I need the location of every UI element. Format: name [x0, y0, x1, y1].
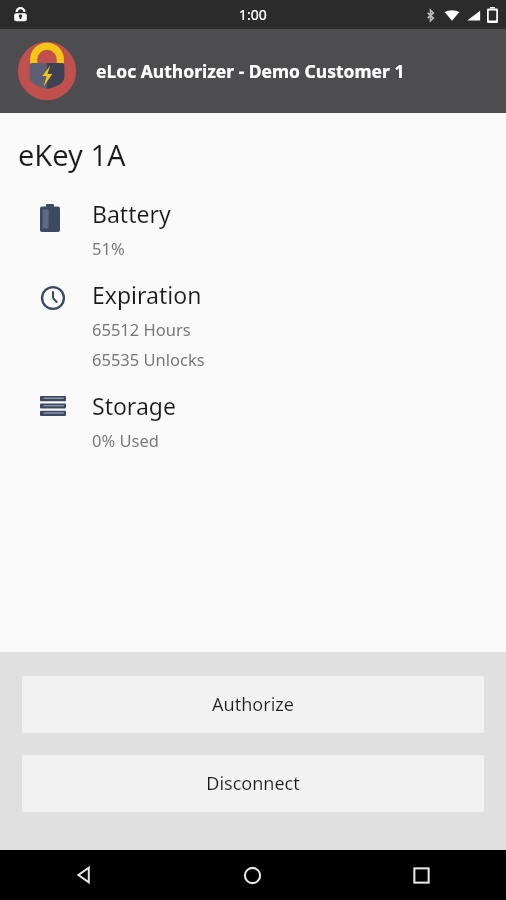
staticText: 51%: [92, 237, 125, 259]
staticText: eLoc Authorizer - Demo Customer 1: [96, 59, 405, 83]
staticText: 65535 Unlocks: [92, 348, 205, 370]
staticText: eKey 1A: [18, 135, 126, 174]
staticText: Storage: [92, 390, 176, 421]
staticText: Battery: [92, 198, 171, 229]
button[interactable]: Storage: [0, 390, 506, 451]
button[interactable]: Authorize: [22, 676, 484, 733]
button[interactable]: Expiration: [0, 279, 506, 370]
button[interactable]: Disconnect: [22, 755, 484, 812]
staticText: Authorize: [212, 692, 294, 717]
button[interactable]: Battery: [0, 198, 506, 259]
staticText: 1:00: [239, 5, 267, 24]
staticText: 0% Used: [92, 429, 159, 451]
staticText: 65512 Hours: [92, 318, 191, 340]
button[interactable]: Back: [0, 850, 168, 900]
button[interactable]: Recent apps: [337, 850, 506, 900]
staticText: Expiration: [92, 279, 202, 310]
button[interactable]: Home: [168, 850, 337, 900]
staticText: Disconnect: [206, 771, 300, 796]
